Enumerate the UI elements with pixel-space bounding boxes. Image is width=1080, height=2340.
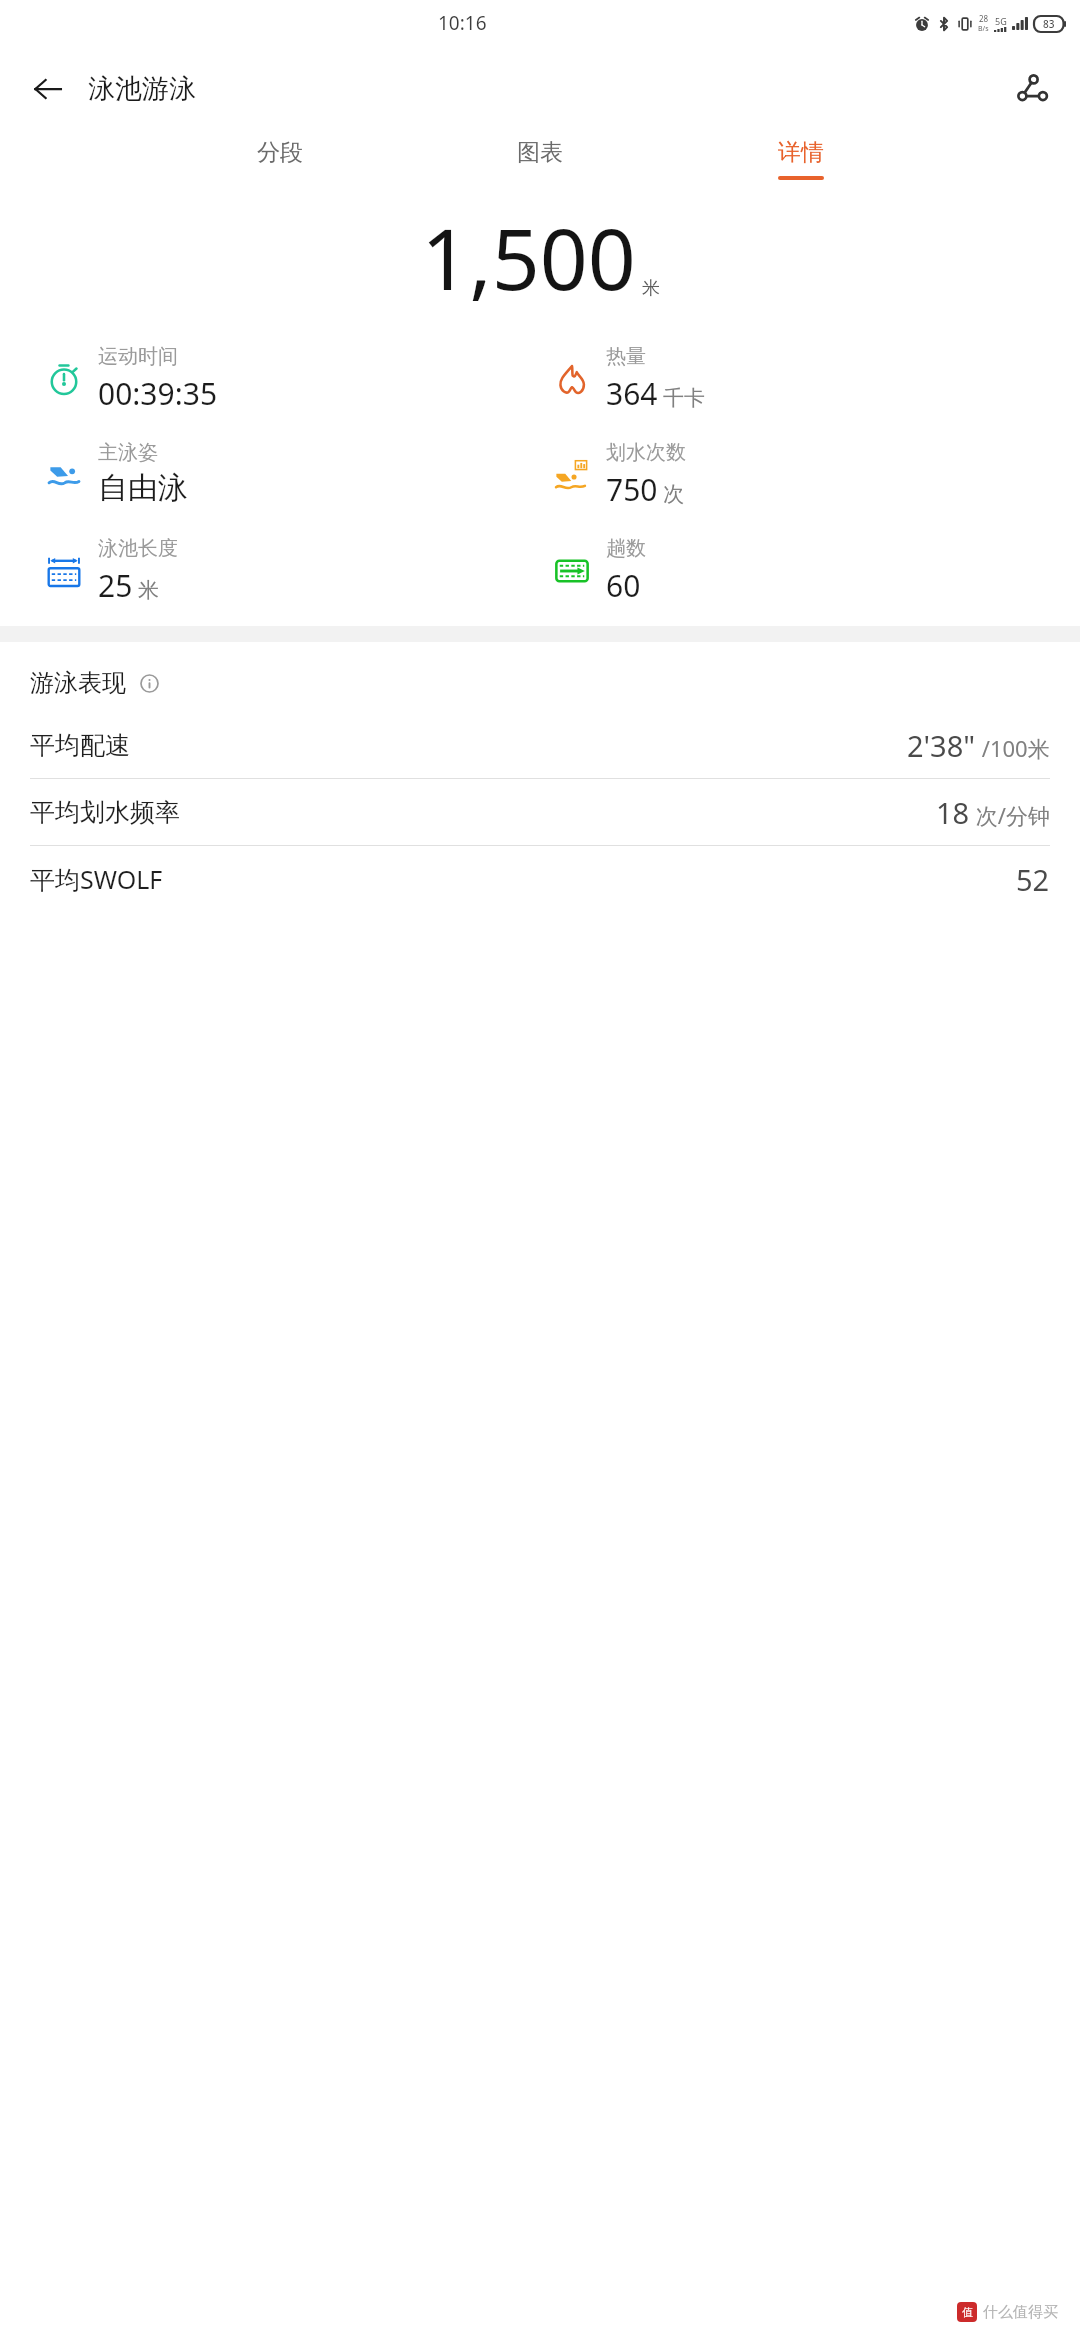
staticText: 00:39:35 [98,373,218,414]
staticText: 泳池游泳 [88,72,196,106]
staticText: 划水次数 [606,440,686,465]
staticText: 18 [936,793,970,832]
button[interactable]: 分段 [239,132,321,186]
staticText: 1,500 [421,200,636,314]
staticText: 次 [663,481,684,507]
staticText: 10:16 [438,10,487,36]
staticText: 米 [642,277,660,300]
button[interactable]: Back [24,65,72,113]
staticText: 平均配速 [30,730,130,761]
staticText: 图表 [517,138,563,167]
staticText: 平均SWOLF [30,862,163,896]
staticText: 值 [962,2305,973,2319]
staticText: 自由泳 [98,469,188,507]
staticText: 热量 [606,344,646,369]
staticText: 详情 [778,138,824,167]
staticText: /100米 [976,733,1050,763]
staticText: 28 [979,13,989,24]
staticText: 分段 [257,138,303,167]
staticText: 83 [1043,17,1055,31]
staticText: 25 [98,565,133,606]
button[interactable]: 平均SWOLF [0,846,1080,912]
staticText: 750 [606,469,658,510]
staticText: 泳池长度 [98,536,178,561]
button[interactable]: 详情 [760,132,842,186]
staticText: 米 [138,577,159,603]
staticText: 60 [606,565,641,606]
staticText: 什么值得买 [983,2303,1058,2322]
button[interactable]: 平均配速 [0,712,1080,778]
button[interactable]: 图表 [499,132,581,186]
button[interactable]: Share [1006,63,1058,115]
staticText: 游泳表现 [30,668,126,698]
staticText: 平均划水频率 [30,797,180,828]
staticText: 运动时间 [98,344,178,369]
staticText: B/s [978,24,989,34]
button[interactable]: Info [134,668,164,698]
staticText: 5G [995,15,1007,27]
button[interactable]: 平均划水频率 [0,779,1080,845]
staticText: 趟数 [606,536,646,561]
staticText: 52 [1016,860,1050,899]
staticText: 2'38" [907,726,976,765]
staticText: 364 [606,373,658,414]
staticText: 千卡 [663,385,705,411]
staticText: 主泳姿 [98,440,158,465]
staticText: 次/分钟 [970,800,1050,830]
